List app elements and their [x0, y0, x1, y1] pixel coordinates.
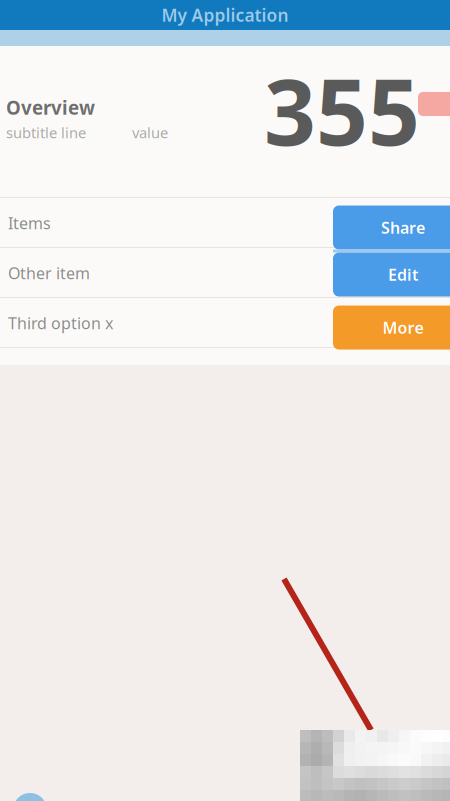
staticText: Items	[8, 212, 51, 234]
staticText: subtitle line	[6, 123, 86, 142]
button[interactable]: Items	[0, 198, 450, 248]
button[interactable]: Edit	[333, 252, 450, 296]
button[interactable]: More	[333, 305, 450, 349]
staticText: Third option x	[8, 312, 113, 334]
button[interactable]: Other item	[0, 248, 450, 298]
staticText: 355	[264, 50, 420, 170]
button[interactable]: Share	[333, 205, 450, 249]
staticText: value	[132, 123, 168, 142]
button[interactable]: Third option x	[0, 298, 450, 348]
staticText: Share	[381, 217, 425, 238]
staticText: Overview	[6, 95, 95, 120]
staticText: Other item	[8, 262, 90, 284]
staticText: My Application	[161, 3, 288, 26]
button[interactable]: Home tab	[13, 793, 47, 801]
staticText: More	[382, 317, 423, 338]
staticText: Edit	[388, 264, 418, 285]
